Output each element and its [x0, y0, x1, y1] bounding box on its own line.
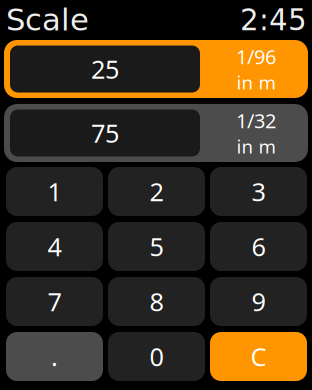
staticText: 2:45	[240, 3, 307, 37]
staticText: 6	[251, 230, 265, 263]
button[interactable]: 1	[6, 167, 103, 216]
button[interactable]: 9	[210, 277, 307, 326]
staticText: Scale	[6, 2, 89, 38]
staticText: .	[51, 340, 58, 373]
staticText: 1	[47, 175, 61, 208]
staticText: 1/32	[236, 107, 276, 134]
staticText: 5	[149, 230, 163, 263]
staticText: 8	[149, 285, 163, 318]
button[interactable]: 75	[10, 109, 200, 156]
staticText: 25	[91, 52, 119, 86]
button[interactable]: 3	[210, 167, 307, 216]
button[interactable]: 2	[108, 167, 205, 216]
staticText: in m	[236, 70, 275, 95]
button[interactable]: 7	[6, 277, 103, 326]
button[interactable]: .	[6, 332, 103, 381]
staticText: C	[250, 340, 266, 373]
staticText: 2	[149, 175, 163, 208]
button[interactable]: C	[210, 332, 307, 381]
button[interactable]: 1/96	[200, 40, 312, 98]
button[interactable]: 0	[108, 332, 205, 381]
button[interactable]: 1/32	[200, 104, 312, 162]
staticText: 4	[47, 230, 61, 263]
button[interactable]: 25	[10, 45, 200, 92]
button[interactable]: 8	[108, 277, 205, 326]
button[interactable]: 4	[6, 222, 103, 271]
staticText: 9	[251, 285, 265, 318]
button[interactable]: 5	[108, 222, 205, 271]
button[interactable]: 6	[210, 222, 307, 271]
staticText: 1/96	[236, 43, 276, 70]
staticText: in m	[236, 134, 275, 159]
staticText: 3	[251, 175, 265, 208]
staticText: 75	[91, 116, 119, 150]
staticText: 7	[47, 285, 61, 318]
staticText: 0	[149, 340, 163, 373]
